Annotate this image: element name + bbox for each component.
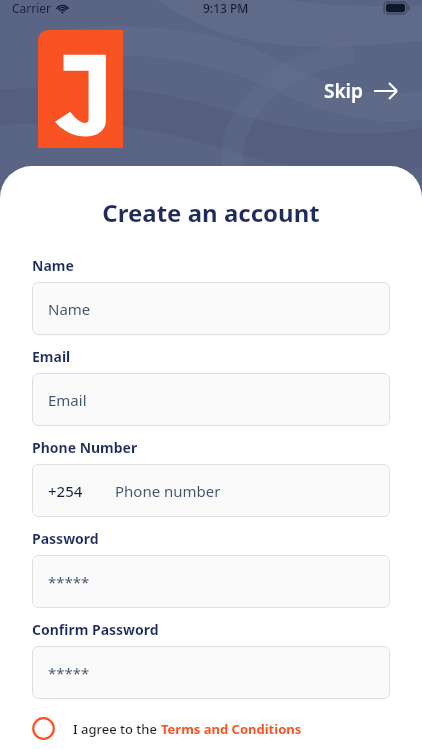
staticText: I agree to the bbox=[73, 720, 161, 738]
staticText: 9:13 PM bbox=[203, 0, 249, 16]
staticText: Phone Number bbox=[32, 438, 138, 457]
staticText: Skip bbox=[324, 78, 363, 104]
staticText: Email bbox=[48, 390, 87, 410]
button[interactable]: Email bbox=[32, 373, 390, 426]
button[interactable]: +254 bbox=[32, 464, 390, 517]
staticText: Email bbox=[32, 347, 71, 366]
staticText: Terms and Conditions bbox=[161, 720, 302, 738]
staticText: Name bbox=[48, 299, 91, 319]
staticText: Password bbox=[32, 529, 99, 548]
staticText: ***** bbox=[48, 663, 90, 683]
button[interactable]: Name bbox=[32, 282, 390, 335]
staticText: Create an account bbox=[0, 196, 422, 229]
staticText: Confirm Password bbox=[32, 620, 159, 639]
staticText: ***** bbox=[48, 572, 90, 592]
staticText: Phone number bbox=[115, 481, 221, 501]
button[interactable]: Skip bbox=[318, 74, 405, 108]
button[interactable]: I agree to the bbox=[0, 715, 422, 742]
button[interactable]: ***** bbox=[32, 555, 390, 608]
staticText: Name bbox=[32, 256, 74, 275]
button[interactable]: ***** bbox=[32, 646, 390, 699]
staticText: Carrier bbox=[12, 0, 52, 16]
staticText: +254 bbox=[48, 481, 83, 501]
